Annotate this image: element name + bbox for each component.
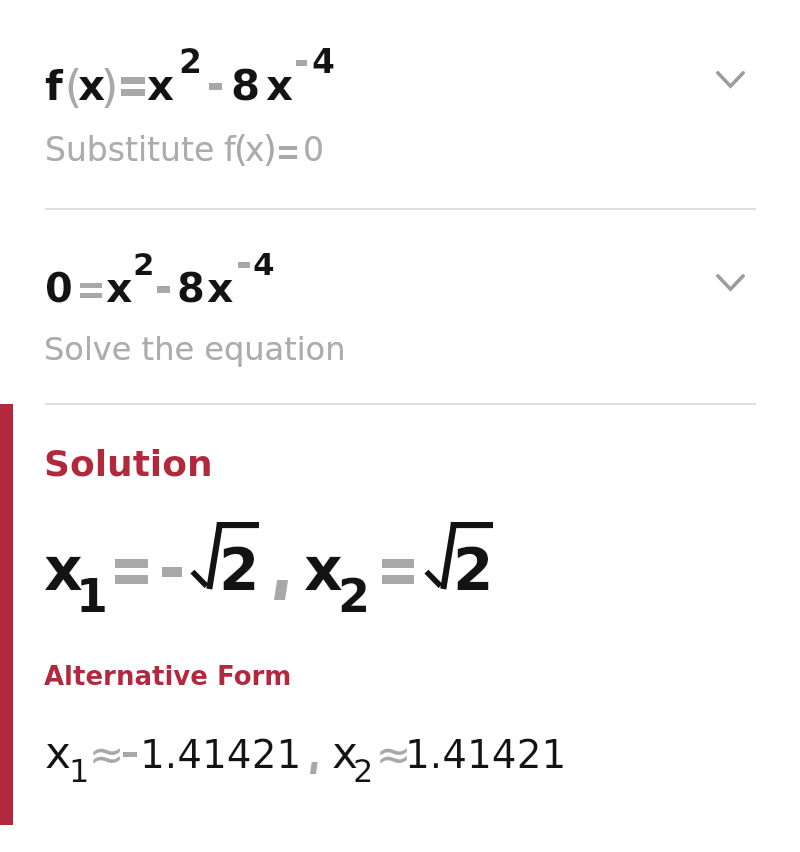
- staticText: f: [45, 62, 63, 110]
- staticText: 2: [219, 536, 260, 604]
- staticText: x: [106, 264, 133, 312]
- staticText: 2: [338, 569, 371, 623]
- staticText: (: [65, 61, 83, 112]
- staticText: x: [207, 264, 234, 312]
- staticText: x: [266, 61, 294, 110]
- staticText: 2: [133, 246, 155, 282]
- staticText: x: [332, 727, 359, 778]
- staticText: 8: [231, 61, 261, 110]
- button[interactable]: Collapse step: [706, 56, 754, 104]
- staticText: ≈: [89, 730, 125, 779]
- button[interactable]: [0, 0, 800, 209]
- staticText: Substitute: [45, 130, 215, 168]
- staticText: x: [304, 534, 343, 604]
- staticText: ≈: [376, 730, 412, 779]
- staticText: 1: [76, 569, 109, 623]
- staticText: 1.41421: [405, 732, 567, 777]
- staticText: 0: [45, 265, 73, 312]
- staticText: Alternative Form: [44, 661, 292, 691]
- staticText: 4: [312, 42, 335, 80]
- staticText: x: [44, 534, 83, 604]
- staticText: 8: [177, 265, 205, 312]
- staticText: 0: [303, 130, 324, 168]
- staticText: (: [234, 129, 248, 170]
- staticText: Solve the equation: [44, 330, 346, 367]
- staticText: 4: [253, 246, 275, 282]
- button[interactable]: [0, 209, 800, 404]
- staticText: 1: [69, 752, 90, 789]
- staticText: x: [78, 61, 106, 110]
- staticText: x: [45, 727, 72, 778]
- staticText: f: [224, 130, 236, 168]
- staticText: x: [245, 130, 265, 168]
- staticText: 2: [353, 752, 374, 789]
- staticText: Solution: [44, 443, 213, 485]
- staticText: ): [101, 61, 119, 112]
- staticText: 2: [453, 536, 494, 604]
- staticText: x: [147, 61, 175, 110]
- button[interactable]: Collapse step: [706, 259, 754, 307]
- staticText: 2: [179, 42, 202, 80]
- staticText: ): [263, 129, 277, 170]
- staticText: 1.41421: [140, 732, 302, 777]
